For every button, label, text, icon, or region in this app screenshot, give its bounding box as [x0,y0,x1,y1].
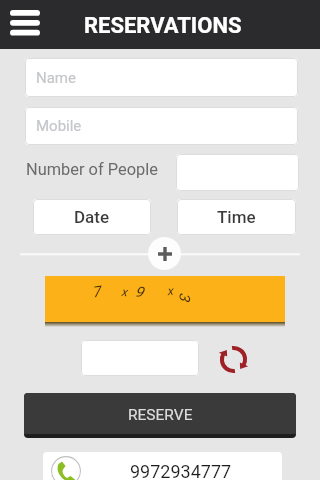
staticText: 9972934777 [130,461,232,480]
button[interactable]: Open navigation menu [0,0,50,49]
button[interactable]: RESERVE [24,393,296,438]
staticText: Number of People [26,160,158,179]
button[interactable]: Mobile [25,107,298,145]
staticText: Time [217,207,256,227]
staticText: RESERVATIONS [84,13,242,39]
button[interactable]: Add [148,237,181,270]
staticText: x [166,284,174,298]
staticText: 3 [175,292,194,302]
staticText: 9 [133,282,146,302]
staticText: Mobile [36,117,82,135]
staticText: Name [36,69,76,87]
staticText: 7 [91,282,102,302]
button[interactable]: Date [33,199,151,235]
staticText: RESERVE [128,406,193,424]
button[interactable]: 9972934777 [43,452,282,480]
button[interactable] [176,154,299,191]
button[interactable]: Refresh captcha [217,343,250,376]
staticText: Date [74,207,110,227]
button[interactable]: Time [177,199,296,235]
staticText: x [120,285,128,299]
button[interactable]: Name [25,58,298,97]
button[interactable] [81,340,199,376]
